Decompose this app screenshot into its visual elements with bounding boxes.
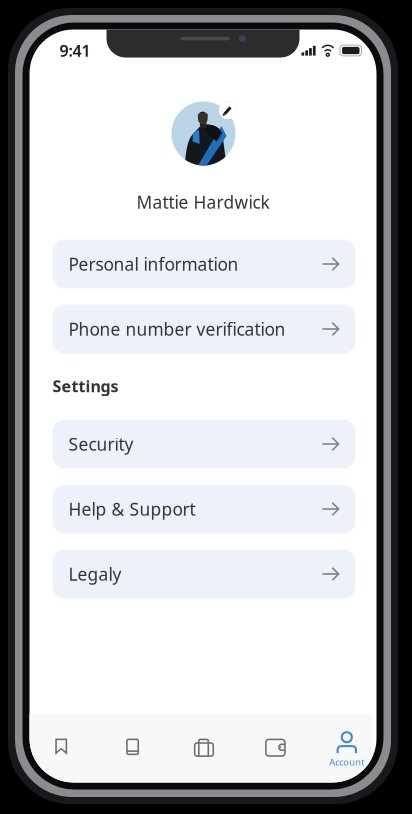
button[interactable]: Legaly xyxy=(52,549,355,598)
staticText: 9:41 xyxy=(59,40,90,61)
staticText: Mattie Hardwick xyxy=(136,190,269,213)
button[interactable]: Edit profile photo xyxy=(171,91,248,165)
staticText: Security xyxy=(68,432,133,455)
button[interactable]: Security xyxy=(52,419,355,468)
staticText: Personal information xyxy=(68,252,238,275)
button[interactable]: Library xyxy=(97,713,168,782)
staticText: Help & Support xyxy=(68,497,195,520)
button[interactable]: Phone number verification xyxy=(52,304,355,353)
staticText: Phone number verification xyxy=(68,317,285,340)
button[interactable]: Saved xyxy=(25,713,97,782)
staticText: Settings xyxy=(52,375,118,397)
button[interactable]: Help & Support xyxy=(52,484,355,533)
button[interactable]: Personal information xyxy=(52,239,355,288)
staticText: Account xyxy=(329,756,364,768)
button[interactable]: Jobs xyxy=(168,713,240,782)
button[interactable]: Account xyxy=(311,713,382,782)
staticText: Legaly xyxy=(68,562,121,585)
button[interactable]: Wallet xyxy=(240,713,311,782)
